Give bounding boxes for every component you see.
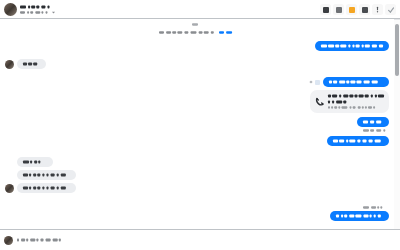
button[interactable] <box>4 3 55 16</box>
button[interactable] <box>17 157 53 167</box>
button[interactable]: Pin <box>346 4 357 15</box>
button[interactable] <box>17 170 76 180</box>
button[interactable]: Write a message <box>17 238 396 242</box>
button[interactable] <box>315 41 389 51</box>
button[interactable]: Info <box>320 4 331 15</box>
other: Voice call <box>315 97 324 106</box>
button[interactable]: Mark as read <box>385 4 396 15</box>
button[interactable] <box>357 117 389 127</box>
button[interactable] <box>17 183 76 193</box>
button[interactable]: Archive <box>333 4 344 15</box>
button[interactable] <box>323 77 389 87</box>
button[interactable]: Mute <box>359 4 370 15</box>
button[interactable] <box>330 211 389 221</box>
button[interactable]: More options <box>372 4 383 15</box>
button[interactable] <box>327 136 389 146</box>
button[interactable]: Voice call <box>310 90 389 113</box>
button[interactable] <box>17 59 46 69</box>
